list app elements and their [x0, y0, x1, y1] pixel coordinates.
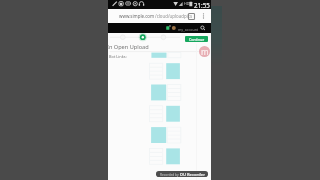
staticText: my_account	[178, 27, 199, 32]
staticText: Bot Links:	[109, 54, 127, 59]
staticText: 21:55	[194, 1, 210, 9]
button[interactable]: Tabs	[188, 13, 195, 20]
button[interactable]: Account	[199, 46, 210, 57]
staticText: /cloud/uploadpics	[155, 13, 192, 19]
staticText: Recorded by	[160, 173, 180, 177]
staticText: m	[201, 46, 209, 57]
staticText: Continue	[189, 37, 205, 42]
button[interactable]: More options	[200, 12, 207, 19]
staticText: DU Recorder	[180, 172, 205, 177]
button[interactable]: Continue	[185, 36, 208, 42]
staticText: www.simple.com	[119, 13, 155, 19]
staticText: In Open Upload	[107, 43, 149, 51]
button[interactable]: www.simple.com	[108, 9, 211, 23]
button[interactable]: Search	[198, 24, 207, 33]
staticText: HD	[184, 1, 190, 6]
